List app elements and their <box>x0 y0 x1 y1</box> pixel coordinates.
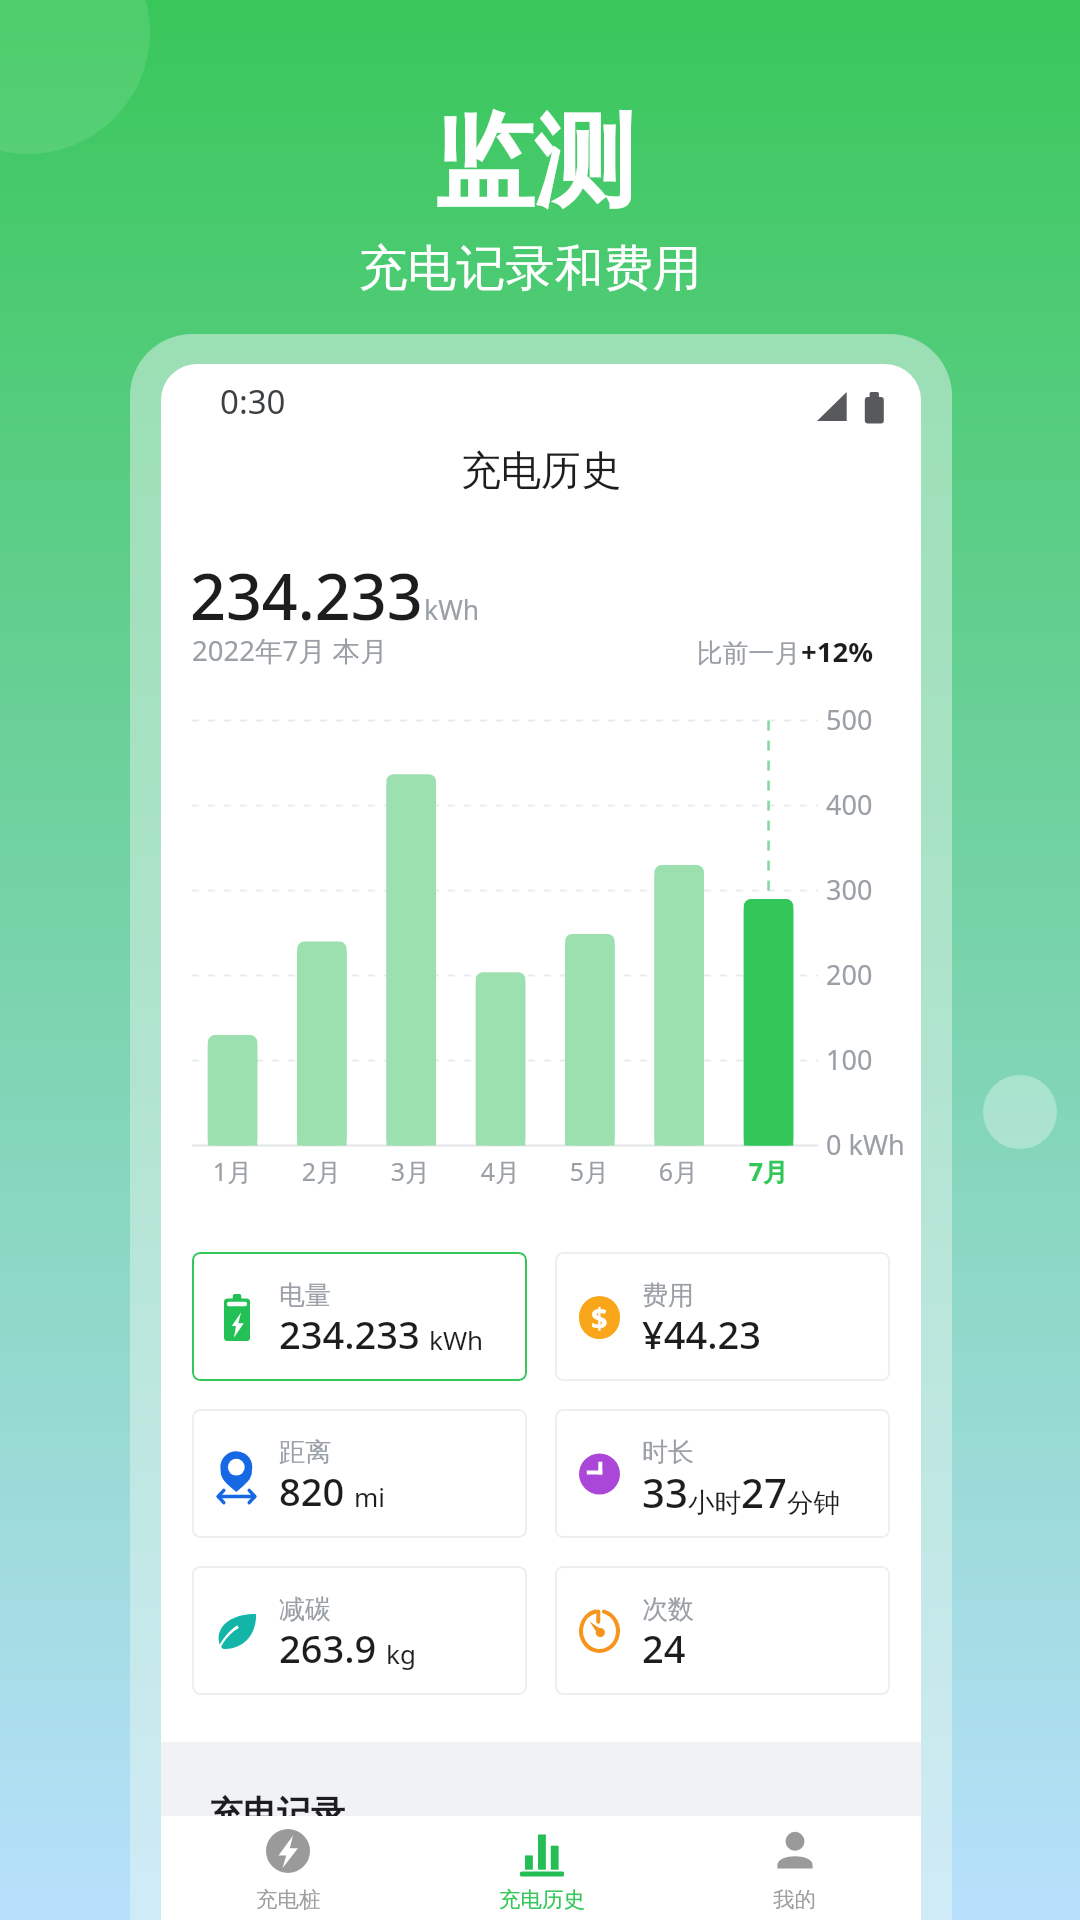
staticText: 比前一月 <box>697 637 801 670</box>
staticText: 100 <box>826 1041 873 1078</box>
staticText: 充电历史 <box>499 1886 585 1913</box>
staticText: 33 <box>642 1465 688 1519</box>
staticText: ¥44.23 <box>642 1308 762 1360</box>
staticText: 263.9 <box>279 1622 377 1674</box>
staticText: 距离 <box>279 1436 331 1469</box>
staticText: 时长 <box>642 1436 694 1469</box>
staticText: 0 kWh <box>826 1126 905 1163</box>
staticText: 分钟 <box>787 1486 840 1519</box>
other: Charging history <box>520 1829 564 1873</box>
staticText: 次数 <box>642 1593 694 1626</box>
staticText: 234.233 <box>279 1308 420 1360</box>
staticText: 300 <box>826 871 873 908</box>
staticText: 5月 <box>547 1154 632 1188</box>
staticText: 820 <box>279 1465 345 1517</box>
other: Charging stations <box>266 1829 310 1873</box>
staticText: 4月 <box>458 1154 543 1188</box>
staticText: 234.233 <box>190 553 423 639</box>
staticText: 7月 <box>726 1154 811 1188</box>
staticText: kg <box>386 1636 416 1671</box>
staticText: 400 <box>826 786 873 823</box>
staticText: 200 <box>826 956 873 993</box>
staticText: $ <box>591 1298 608 1337</box>
staticText: 2月 <box>279 1154 364 1188</box>
staticText: 24 <box>642 1622 686 1674</box>
staticText: 1月 <box>190 1154 275 1188</box>
staticText: 2022年7月 本月 <box>192 632 388 670</box>
button[interactable]: 电量 <box>192 1252 527 1381</box>
staticText: 6月 <box>636 1154 721 1188</box>
staticText: 充电记录和费用 <box>0 238 1070 300</box>
staticText: +12% <box>801 633 873 670</box>
button[interactable]: 距离 <box>192 1409 527 1538</box>
button[interactable]: Profile <box>668 1816 921 1920</box>
staticText: 27 <box>741 1465 787 1519</box>
button[interactable]: Charging history <box>415 1816 668 1920</box>
staticText: 3月 <box>368 1154 453 1188</box>
staticText: mi <box>354 1479 386 1514</box>
button[interactable]: 时长 <box>555 1409 890 1538</box>
staticText: 监测 <box>0 99 1074 226</box>
staticText: 减碳 <box>279 1593 331 1626</box>
staticText: 充电桩 <box>256 1886 321 1913</box>
button[interactable]: $ <box>555 1252 890 1381</box>
button[interactable]: 减碳 <box>192 1566 527 1695</box>
staticText: kWh <box>429 1322 484 1357</box>
staticText: 电量 <box>279 1279 331 1312</box>
staticText: 0:30 <box>220 379 286 424</box>
staticText: 我的 <box>773 1886 816 1913</box>
button[interactable]: 次数 <box>555 1566 890 1695</box>
staticText: 500 <box>826 701 873 738</box>
staticText: 充电记录 <box>209 1792 345 1835</box>
staticText: kWh <box>424 592 480 628</box>
staticText: 充电历史 <box>161 445 921 495</box>
staticText: 小时 <box>688 1486 741 1519</box>
button[interactable]: Charging stations <box>161 1816 415 1920</box>
other: Profile <box>773 1829 817 1873</box>
staticText: 费用 <box>642 1279 694 1312</box>
